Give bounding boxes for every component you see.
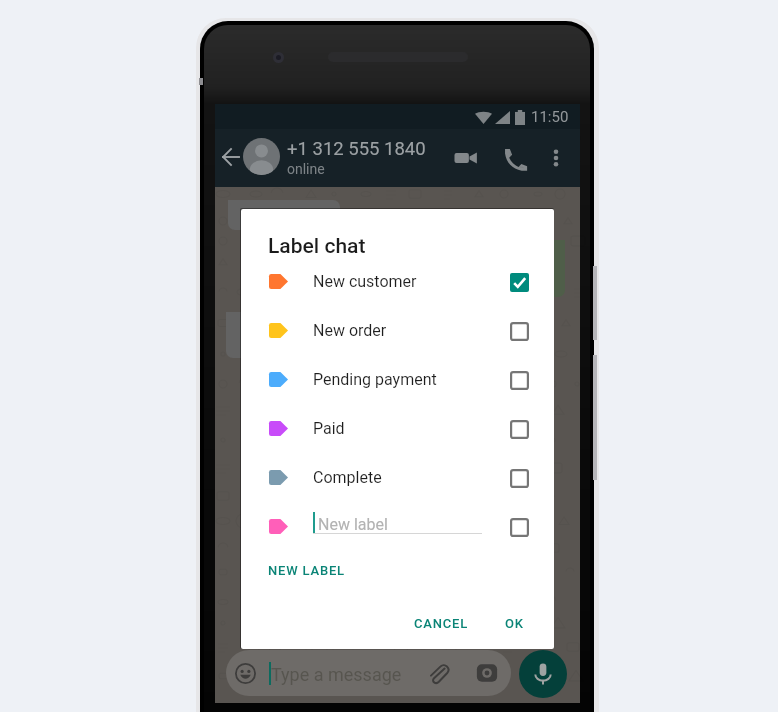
staticText: 11:50 [531, 108, 569, 126]
button[interactable]: Emoji [226, 650, 511, 696]
staticText: New label [318, 515, 388, 534]
staticText: +1 312 555 1840 [287, 138, 426, 160]
button[interactable]: Not selected [497, 456, 541, 500]
button[interactable]: Not selected [497, 407, 541, 451]
staticText: Paid [313, 419, 345, 438]
staticText: Label chat [268, 234, 366, 259]
button[interactable]: Emoji [235, 663, 256, 684]
staticText: Type a message [271, 664, 402, 685]
button[interactable]: CANCEL [406, 610, 477, 637]
button[interactable]: Paid [241, 404, 554, 453]
button[interactable]: Back [219, 145, 243, 169]
button[interactable]: New customer [241, 257, 554, 306]
button[interactable]: Not selected [497, 505, 541, 549]
button[interactable]: Selected [497, 260, 541, 304]
button[interactable]: New order [241, 306, 554, 355]
button[interactable]: Record voice message [519, 650, 567, 698]
staticText: CANCEL [414, 616, 469, 631]
button[interactable]: Not selected [497, 358, 541, 402]
button[interactable]: Complete [241, 453, 554, 502]
button[interactable]: Camera [476, 662, 498, 684]
button[interactable]: OK [497, 610, 532, 637]
staticText: New customer [313, 272, 417, 291]
staticText: New order [313, 321, 387, 340]
staticText: Pending payment [313, 370, 437, 389]
button[interactable]: New label [313, 512, 482, 542]
button[interactable]: More options [541, 143, 571, 173]
button[interactable]: Video call [450, 142, 482, 174]
button[interactable]: Attach [427, 662, 449, 684]
staticText: online [287, 161, 325, 177]
staticText: Complete [313, 468, 382, 487]
button[interactable]: Call [498, 142, 530, 174]
staticText: OK [505, 616, 524, 631]
staticText: NEW LABEL [268, 563, 345, 578]
button[interactable]: Pending payment [241, 355, 554, 404]
button[interactable]: NEW LABEL [260, 557, 353, 584]
button[interactable]: Not selected [497, 309, 541, 353]
